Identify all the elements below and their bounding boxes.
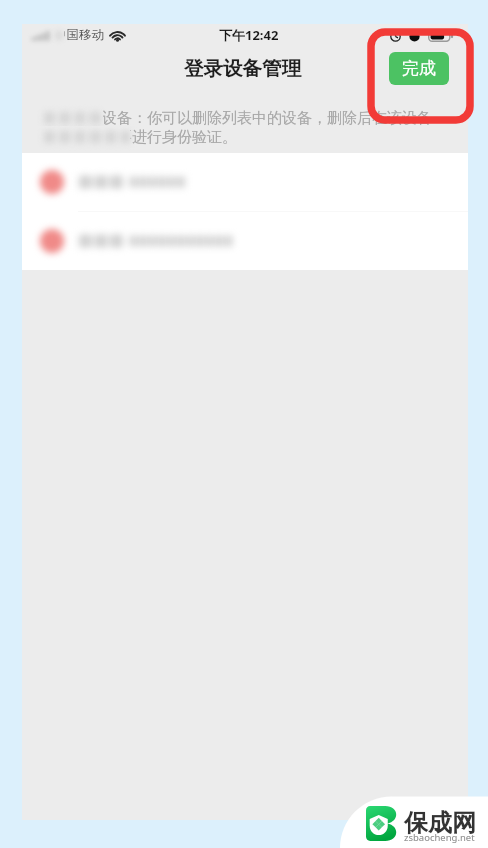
- staticText: 完成: [402, 58, 436, 79]
- button[interactable]: Delete iPhone: [22, 153, 468, 211]
- staticText: zsbaocheng.net: [404, 831, 475, 844]
- staticText: 最近登录设备：你可以删除列表中的设备，删除后在该设备上登录时需要进行身份验证。: [42, 109, 446, 147]
- button[interactable]: 完成: [389, 52, 449, 85]
- staticText: 下午12:42: [219, 26, 279, 44]
- button[interactable]: Delete MacBook Pro: [22, 212, 468, 270]
- other: Delete MacBook Pro: [37, 226, 67, 256]
- staticText: 中国移动: [54, 27, 104, 43]
- staticText: 保成网: [404, 808, 476, 838]
- staticText: 登录设备管理: [184, 56, 301, 81]
- other: Delete iPhone: [37, 167, 67, 197]
